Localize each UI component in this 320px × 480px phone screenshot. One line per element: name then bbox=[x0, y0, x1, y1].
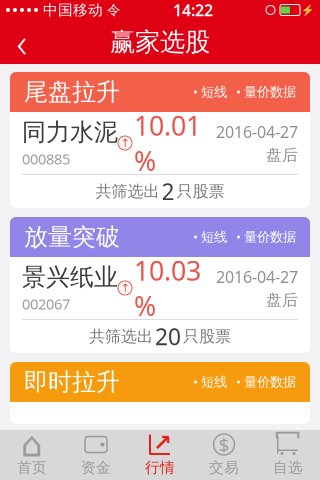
staticText: 002067 bbox=[22, 294, 70, 313]
staticText: 量价数据 bbox=[244, 84, 296, 100]
staticText: 短线 bbox=[201, 374, 227, 390]
staticText: 量价数据 bbox=[244, 374, 296, 390]
staticText: 20 bbox=[155, 321, 181, 351]
staticText: 盘后 bbox=[266, 290, 298, 310]
button[interactable]: Back bbox=[0, 20, 44, 64]
staticText: 2 bbox=[161, 176, 174, 206]
staticText: 共筛选出 bbox=[89, 327, 153, 346]
staticText: 交易 bbox=[209, 458, 239, 476]
staticText: ‹ bbox=[16, 15, 27, 68]
staticText: 赢家选股 bbox=[110, 26, 210, 57]
staticText: 同力水泥 bbox=[22, 117, 118, 147]
staticText: ⚡ bbox=[301, 4, 314, 16]
staticText: 放量突破 bbox=[24, 222, 120, 252]
staticText: 14:22 bbox=[173, 0, 213, 21]
staticText: ↑ bbox=[120, 281, 130, 295]
button[interactable]: 尾盘拉升 bbox=[10, 72, 310, 208]
staticText: 2016-04-27 bbox=[216, 121, 298, 142]
staticText: 000885 bbox=[22, 149, 70, 168]
staticText: 令 bbox=[107, 2, 120, 18]
staticText: ↑ bbox=[120, 136, 130, 150]
staticText: 资金 bbox=[81, 458, 111, 476]
staticText: 10.03% bbox=[134, 253, 201, 323]
staticText: 共筛选出 bbox=[95, 182, 159, 201]
staticText: 首页 bbox=[17, 458, 47, 476]
staticText: 只股票 bbox=[176, 182, 224, 201]
button[interactable]: 冖 bbox=[256, 430, 320, 480]
staticText: 量价数据 bbox=[244, 229, 296, 245]
button[interactable]: ⌂ bbox=[0, 430, 64, 480]
staticText: 尾盘拉升 bbox=[24, 77, 120, 107]
button[interactable]: ↗ bbox=[128, 430, 192, 480]
staticText: 即时拉升 bbox=[24, 367, 120, 397]
button[interactable]: 即时拉升 bbox=[10, 362, 310, 424]
staticText: 短线 bbox=[201, 84, 227, 100]
staticText: 短线 bbox=[201, 229, 227, 245]
staticText: ↗ bbox=[153, 430, 172, 456]
button[interactable]: 放量突破 bbox=[10, 217, 310, 353]
button[interactable]: $ bbox=[192, 430, 256, 480]
staticText: 2016-04-27 bbox=[216, 266, 298, 287]
staticText: 中国移动 bbox=[43, 1, 103, 19]
staticText: 只股票 bbox=[183, 327, 231, 346]
staticText: 盘后 bbox=[266, 145, 298, 165]
staticText: $ bbox=[218, 432, 229, 457]
staticText: ⌂ bbox=[21, 425, 43, 464]
button[interactable]: 资金 bbox=[64, 430, 128, 480]
staticText: 10.01% bbox=[134, 108, 201, 178]
staticText: 自选 bbox=[273, 458, 303, 476]
staticText: 冖 bbox=[274, 426, 301, 459]
staticText: 行情 bbox=[145, 458, 175, 476]
staticText: 景兴纸业 bbox=[22, 262, 118, 292]
